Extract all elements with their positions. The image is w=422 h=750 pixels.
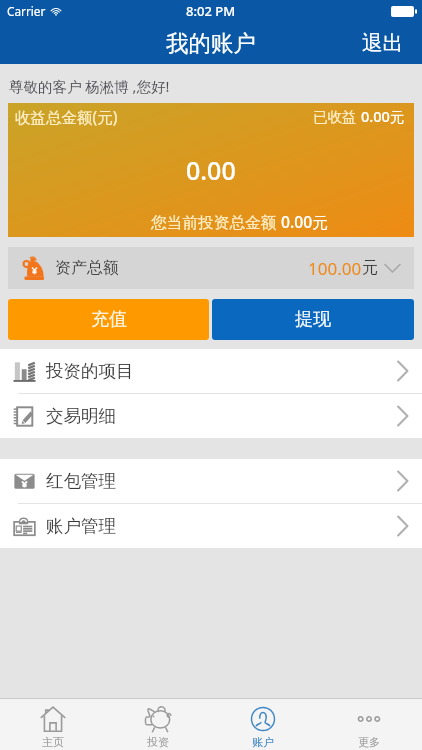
staticText: 0.00元	[361, 106, 405, 126]
staticText: 已收益	[313, 106, 361, 126]
button[interactable]: 投资的项目	[0, 349, 422, 393]
staticText: 提现	[295, 308, 331, 331]
button[interactable]: 主页	[0, 699, 105, 750]
button[interactable]: 更多	[316, 699, 422, 750]
staticText: 主页	[42, 735, 64, 749]
staticText: 您当前投资总金额	[151, 211, 281, 232]
staticText: 收益总金额(元)	[15, 106, 118, 127]
button[interactable]: 充值	[8, 299, 209, 340]
staticText: 0.00	[186, 153, 236, 187]
staticText: 更多	[358, 735, 380, 749]
button[interactable]: 投资	[105, 699, 210, 750]
staticText: 0.00元	[281, 211, 328, 232]
staticText: 账户管理	[46, 515, 116, 537]
button[interactable]: 交易明细	[0, 394, 422, 438]
other: Battery	[391, 6, 417, 17]
staticText: 元	[362, 258, 378, 278]
button[interactable]: 账户	[210, 699, 316, 750]
staticText: 充值	[91, 308, 127, 331]
staticText: 账户	[252, 735, 274, 749]
staticText: Carrier	[7, 3, 46, 19]
button[interactable]: 红包管理	[0, 459, 422, 503]
staticText: 尊敬的客户 杨淞博 ,您好!	[9, 76, 170, 96]
button[interactable]: 退出	[344, 24, 422, 62]
button[interactable]: 账户管理	[0, 504, 422, 548]
staticText: 8:02 PM	[186, 2, 236, 20]
staticText: 100.00	[308, 257, 362, 280]
staticText: 交易明细	[46, 405, 116, 427]
staticText: 投资	[147, 735, 169, 749]
staticText: 投资的项目	[46, 360, 134, 382]
staticText: 退出	[362, 30, 403, 56]
staticText: 我的账户	[166, 29, 256, 57]
staticText: 红包管理	[46, 470, 116, 492]
button[interactable]: 资产总额	[8, 247, 414, 289]
staticText: 资产总额	[55, 258, 119, 278]
button[interactable]: 提现	[212, 299, 414, 340]
